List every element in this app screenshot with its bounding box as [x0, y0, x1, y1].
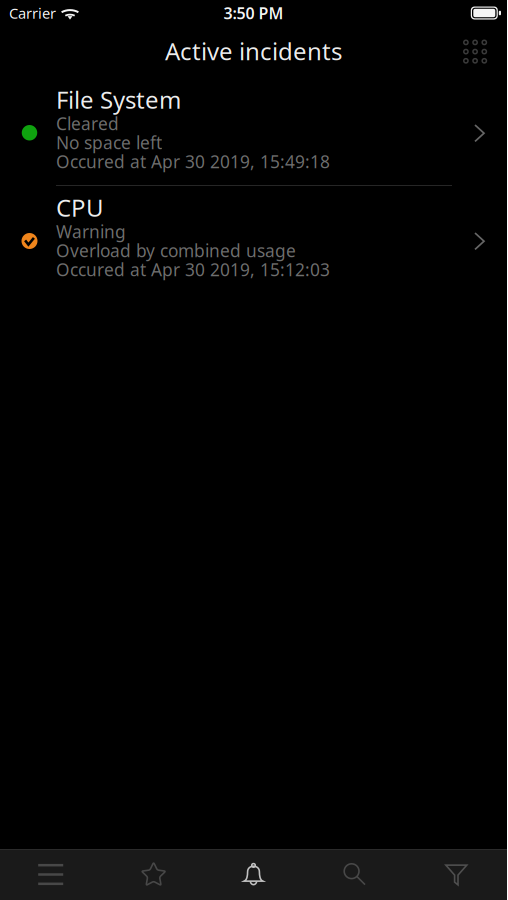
staticText: Cleared [56, 112, 119, 135]
staticText: File System [56, 84, 181, 115]
button[interactable]: Search [304, 849, 406, 900]
staticText: Active incidents [165, 35, 342, 67]
button[interactable]: Grid view [451, 27, 507, 71]
staticText: Warning [56, 220, 126, 243]
button[interactable]: Favorites [101, 849, 203, 900]
button[interactable]: CPU [0, 181, 507, 289]
staticText: CPU [56, 192, 104, 223]
staticText: Carrier [9, 3, 56, 23]
button[interactable]: Filter [406, 849, 507, 900]
button[interactable]: Notifications [203, 849, 304, 900]
button[interactable]: File System [0, 73, 507, 181]
staticText: Overload by combined usage [56, 239, 296, 262]
staticText: Occured at Apr 30 2019, 15:12:03 [56, 258, 330, 281]
staticText: No space left [56, 131, 162, 154]
staticText: 3:50 PM [223, 2, 283, 24]
staticText: Occured at Apr 30 2019, 15:49:18 [56, 150, 330, 173]
button[interactable]: Menu [0, 849, 101, 900]
